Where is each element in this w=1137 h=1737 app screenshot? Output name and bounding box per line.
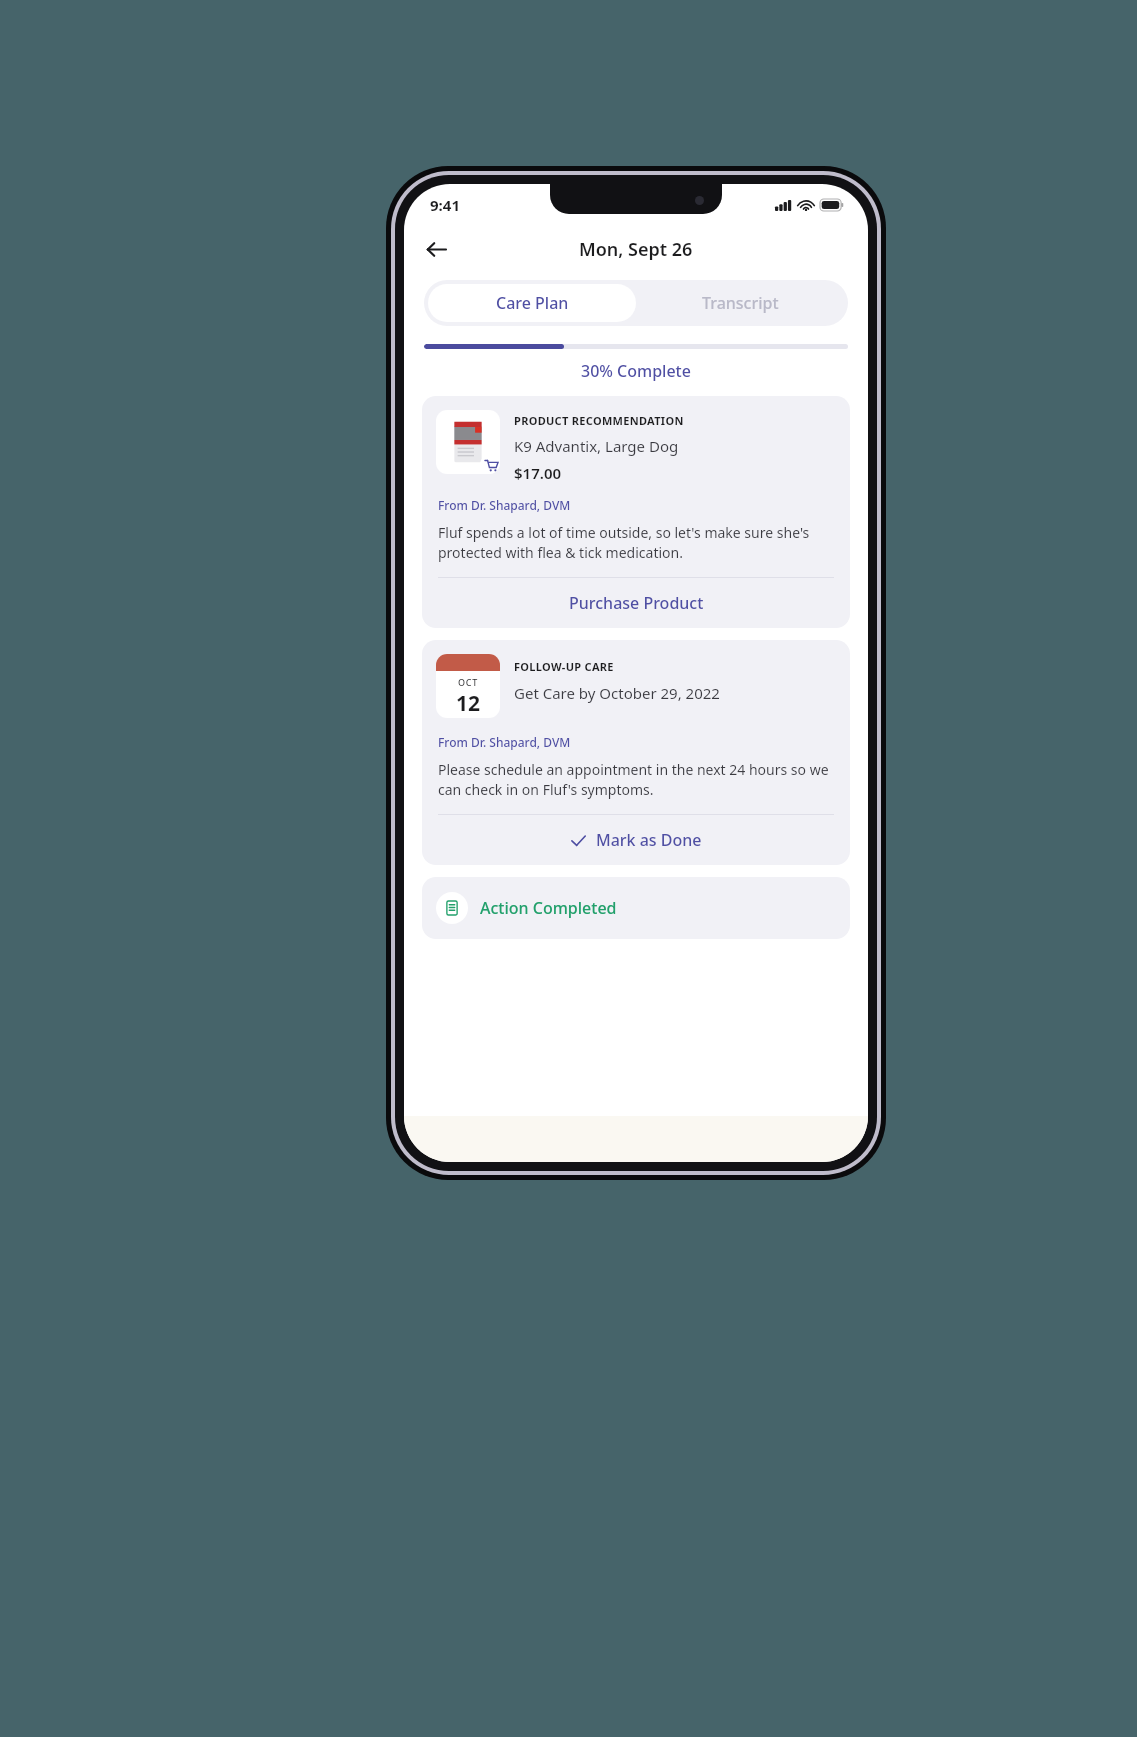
staticText: Purchase Product (569, 592, 704, 614)
staticText: 9:41 (430, 195, 460, 215)
staticText: 30% Complete (581, 360, 691, 382)
staticText: Please schedule an appointment in the ne… (438, 760, 834, 800)
staticText: Mon, Sept 26 (579, 237, 693, 262)
staticText: From Dr. Shapard, DVM (438, 734, 571, 750)
button[interactable]: Care Plan (428, 284, 636, 322)
button[interactable]: Action Completed (422, 877, 850, 939)
staticText: Fluf spends a lot of time outside, so le… (438, 523, 834, 563)
other: Add to cart (480, 454, 500, 474)
button[interactable]: OCT (422, 640, 850, 865)
staticText: K9 Advantix, Large Dog (514, 436, 679, 456)
button[interactable]: Add to cart (422, 396, 850, 628)
staticText: Get Care by October 29, 2022 (514, 683, 720, 703)
staticText: OCT (458, 676, 479, 688)
button[interactable]: Transcript (636, 284, 844, 322)
button[interactable]: Purchase Product (422, 578, 850, 628)
staticText: PRODUCT RECOMMENDATION (514, 413, 684, 428)
staticText: 12 (456, 689, 481, 718)
staticText: Action Completed (480, 897, 617, 919)
staticText: Transcript (702, 292, 779, 314)
staticText: Mark as Done (596, 829, 702, 851)
staticText: FOLLOW-UP CARE (514, 659, 614, 674)
button[interactable]: Mark as Done (422, 815, 850, 865)
button[interactable]: Back (416, 229, 456, 269)
staticText: $17.00 (514, 463, 562, 483)
staticText: Care Plan (496, 292, 569, 314)
staticText: From Dr. Shapard, DVM (438, 497, 571, 513)
